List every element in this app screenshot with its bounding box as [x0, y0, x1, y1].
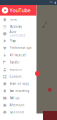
staticText: Save recording: [10, 89, 30, 93]
staticText: Home: [10, 18, 18, 21]
button[interactable]: Afternoon: [0, 102, 36, 109]
staticText: Accounts: [10, 68, 22, 71]
button[interactable]: Save recording: [0, 87, 36, 95]
button[interactable]: Transfer: [0, 59, 36, 66]
button[interactable]: Auto: [0, 30, 36, 37]
button[interactable]: Plays: [0, 37, 36, 45]
button[interactable]: Wall up: [0, 95, 36, 102]
staticText: Auto: [10, 30, 17, 34]
button[interactable]: Accounts: [0, 66, 36, 73]
button[interactable]: Preference opt: [0, 44, 36, 52]
staticText: Connected: [10, 34, 26, 37]
button[interactable]: Experience: [0, 109, 36, 116]
staticText: ••• ▮: [49, 1, 55, 4]
staticText: Content: [10, 75, 22, 78]
button[interactable]: Content: [0, 73, 36, 80]
staticText: YouTube: [10, 7, 31, 14]
staticText: Wall up: [10, 96, 20, 100]
button[interactable]: Share on copy: [0, 80, 36, 87]
staticText: Afternoon: [10, 103, 25, 107]
staticText: Preference opt: [10, 46, 32, 50]
button[interactable]: My Library: [0, 23, 36, 30]
button[interactable]: All music sel: [0, 52, 36, 59]
staticText: All music sel: [10, 53, 27, 57]
staticText: Transfer: [10, 61, 20, 64]
staticText: Share on copy: [10, 82, 29, 86]
staticText: Plays: [10, 39, 16, 43]
staticText: My Library: [10, 25, 22, 28]
staticText: Experience: [10, 111, 25, 114]
button[interactable]: Home: [0, 16, 36, 23]
